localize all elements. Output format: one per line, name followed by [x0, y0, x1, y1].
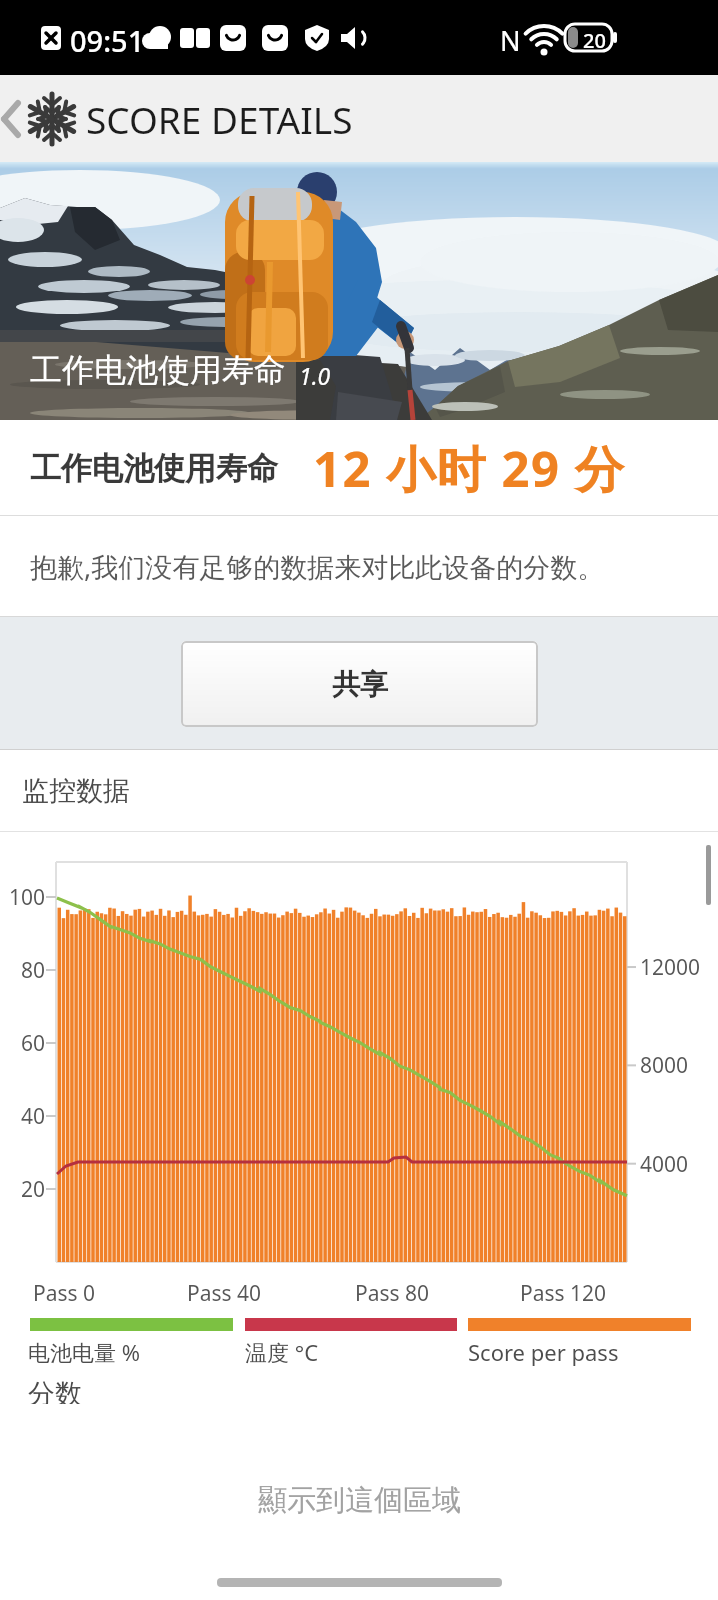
- staticText: SCORE DETAILS: [86, 94, 353, 144]
- staticText: Pass 40: [187, 1279, 262, 1308]
- staticText: 4000: [640, 1150, 689, 1179]
- staticText: Pass 0: [33, 1279, 96, 1308]
- staticText: 100: [9, 883, 46, 912]
- staticText: 20: [583, 27, 606, 54]
- staticText: Score per pass: [468, 1337, 619, 1367]
- staticText: 60: [21, 1029, 46, 1058]
- staticText: 电池电量 %: [28, 1337, 141, 1367]
- staticText: 监控数据: [22, 774, 130, 808]
- staticText: 12000: [640, 953, 701, 982]
- staticText: 40: [21, 1102, 46, 1131]
- staticText: 09:51: [70, 21, 145, 60]
- staticText: 温度 °C: [245, 1337, 319, 1367]
- staticText: 8000: [640, 1051, 689, 1080]
- staticText: Pass 80: [355, 1279, 430, 1308]
- staticText: Pass 120: [520, 1279, 607, 1308]
- staticText: 80: [21, 956, 46, 985]
- button[interactable]: SCORE DETAILS: [0, 75, 718, 162]
- staticText: 工作电池使用寿命: [30, 350, 286, 390]
- staticText: 12 小时 29 分: [313, 435, 626, 502]
- staticText: 分数: [28, 1377, 82, 1411]
- staticText: 共享: [332, 667, 388, 702]
- staticText: N: [500, 22, 521, 59]
- staticText: 抱歉,我们没有足够的数据来对比此设备的分数。: [30, 548, 605, 585]
- staticText: 顯示到這個區域: [258, 1482, 461, 1519]
- button[interactable]: 共享: [181, 641, 538, 727]
- staticText: 工作电池使用寿命: [30, 449, 278, 488]
- staticText: 1.0: [299, 360, 331, 391]
- staticText: 20: [21, 1175, 46, 1204]
